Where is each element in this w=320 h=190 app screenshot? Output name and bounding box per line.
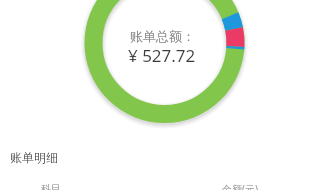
staticText: 金额(元)	[222, 182, 258, 190]
staticText: 账单总额：	[130, 28, 195, 44]
staticText: ¥ 527.72	[128, 44, 196, 67]
staticText: 科目	[41, 182, 61, 190]
staticText: 账单明细	[10, 150, 58, 165]
